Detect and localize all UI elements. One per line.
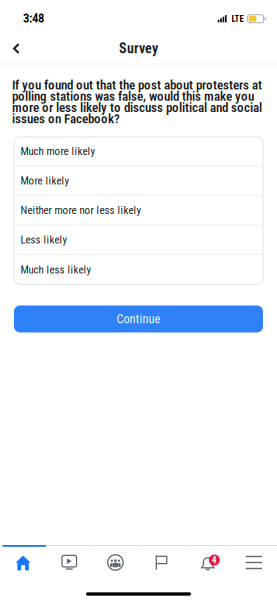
button[interactable]: Watch (46, 545, 92, 579)
staticText: Continue (116, 312, 160, 326)
button[interactable]: Notifications (185, 545, 231, 579)
staticText: 3:48 (23, 10, 44, 25)
staticText: If you found out that the post about pro… (12, 77, 262, 126)
button[interactable]: Marketplace (138, 545, 185, 579)
staticText: Neither more nor less likely (20, 204, 141, 217)
staticText: Much more likely (20, 145, 95, 158)
button[interactable]: More likely (14, 166, 263, 196)
staticText: LTE (232, 14, 244, 24)
button[interactable]: Much more likely (14, 137, 263, 166)
staticText: 4 (212, 554, 217, 565)
staticText: More likely (20, 174, 69, 187)
button[interactable]: Home (0, 545, 46, 579)
button[interactable]: Neither more nor less likely (14, 196, 263, 225)
button[interactable]: Continue (14, 305, 263, 332)
button[interactable]: Less likely (14, 225, 263, 255)
button[interactable]: Much less likely (14, 255, 263, 284)
staticText: Survey (119, 40, 158, 57)
staticText: Much less likely (20, 263, 91, 276)
button[interactable]: Groups (92, 545, 138, 579)
button[interactable]: Back (0, 37, 31, 60)
button[interactable]: Menu (231, 545, 277, 579)
staticText: Less likely (20, 233, 67, 246)
